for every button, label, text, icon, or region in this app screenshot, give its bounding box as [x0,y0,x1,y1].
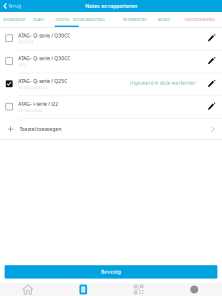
button[interactable]: TOESTEL [55,12,70,27]
staticText: Bevestig [101,269,121,275]
staticText: WERKORDER [3,17,25,22]
staticText: ATAG - Q-serie / Q25C [18,78,67,84]
staticText: KLANT [33,17,44,22]
button[interactable]: ONDERTEKENING [184,12,215,27]
button[interactable]: ATAG - Q-serie / Q30CC [0,50,222,73]
staticText: Toestel toevoegen [19,126,61,132]
staticText: SN 18021-00933-2 [18,86,47,90]
staticText: ATAG - Q-serie / Q30CC [18,32,70,39]
button[interactable]: Scannen [111,283,166,296]
staticText: SN 19034 [18,40,33,45]
staticText: ATAG - Q-serie / Q30CC [18,55,70,62]
button[interactable]: Profiel [166,283,222,296]
button[interactable]: WERKORDER [3,12,25,27]
staticText: ATAG - i-serie / i22 [18,101,58,107]
button[interactable]: ADVIES [158,12,170,27]
button[interactable]: ATAG - Q-serie / Q30CC [0,28,222,50]
staticText: ADVIES [158,17,170,22]
staticText: ONDERTEKENING [184,17,215,22]
button[interactable]: Home [0,283,55,296]
button[interactable]: ATAG - i-serie / i22 [0,96,222,118]
staticText: TOESTEL [55,17,70,22]
staticText: Ingevoerd in deze werkorder [130,80,196,86]
staticText: INTERVENTIES [123,17,147,22]
button[interactable]: KLANT [33,12,44,27]
staticText: SN 19002-0044 [18,109,42,113]
button[interactable]: Bevestig [5,265,217,279]
button[interactable]: ROOKGASMETING [73,12,105,27]
button[interactable]: INTERVENTIES [123,12,147,27]
staticText: 2019 [18,63,26,67]
staticText: Terug [8,3,21,9]
button[interactable]: Terug [0,0,21,12]
button[interactable]: Toestel toevoegen [0,119,222,139]
staticText: ROOKGASMETING [73,17,105,22]
button[interactable]: ATAG - Q-serie / Q25C [0,73,222,95]
button[interactable]: Werkorders [55,283,111,296]
staticText: Notes en rapporteren [85,2,137,10]
